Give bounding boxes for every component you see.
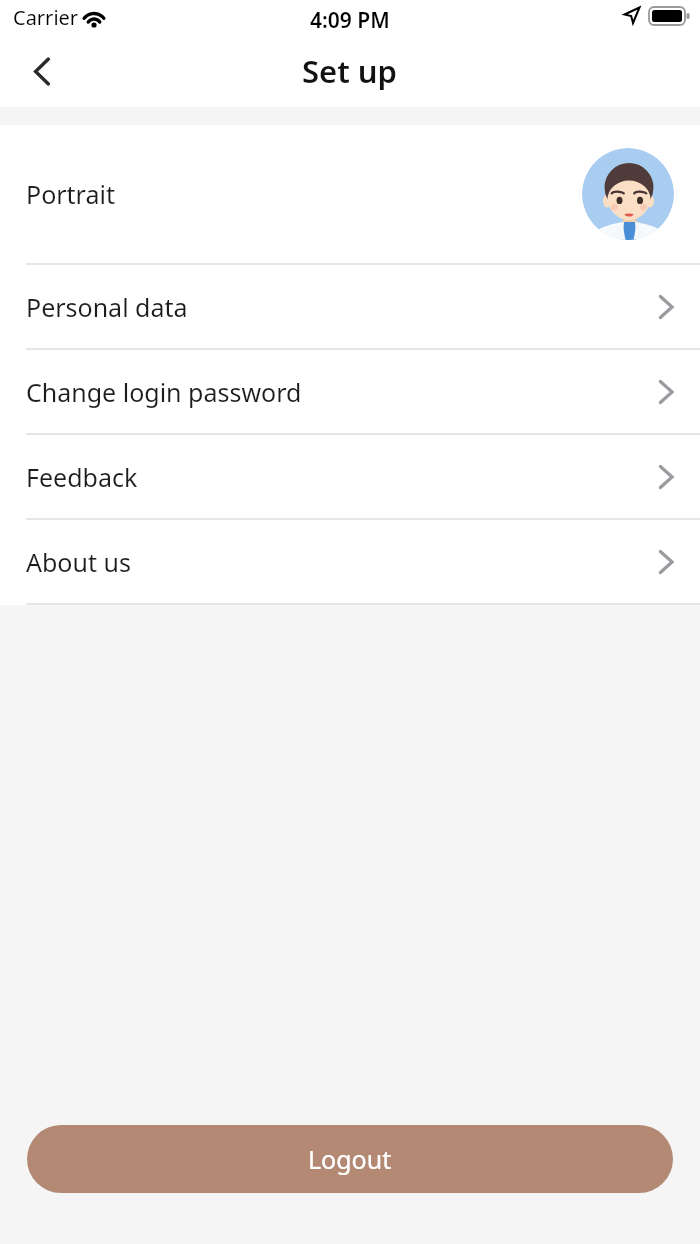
- button[interactable]: [582, 148, 674, 240]
- button[interactable]: Portrait: [0, 125, 700, 263]
- button[interactable]: About us: [0, 520, 700, 603]
- staticText: Set up: [302, 50, 398, 92]
- button[interactable]: [20, 49, 64, 93]
- staticText: Personal data: [26, 290, 188, 324]
- staticText: About us: [26, 545, 131, 579]
- button[interactable]: Logout: [27, 1125, 673, 1193]
- button[interactable]: Personal data: [0, 265, 700, 348]
- staticText: Portrait: [26, 177, 115, 211]
- staticText: Feedback: [26, 460, 138, 494]
- staticText: 4:09 PM: [310, 6, 390, 34]
- staticText: Carrier: [13, 4, 79, 31]
- button[interactable]: Change login password: [0, 350, 700, 433]
- staticText: Logout: [308, 1142, 392, 1176]
- button[interactable]: Feedback: [0, 435, 700, 518]
- staticText: Change login password: [26, 375, 302, 409]
